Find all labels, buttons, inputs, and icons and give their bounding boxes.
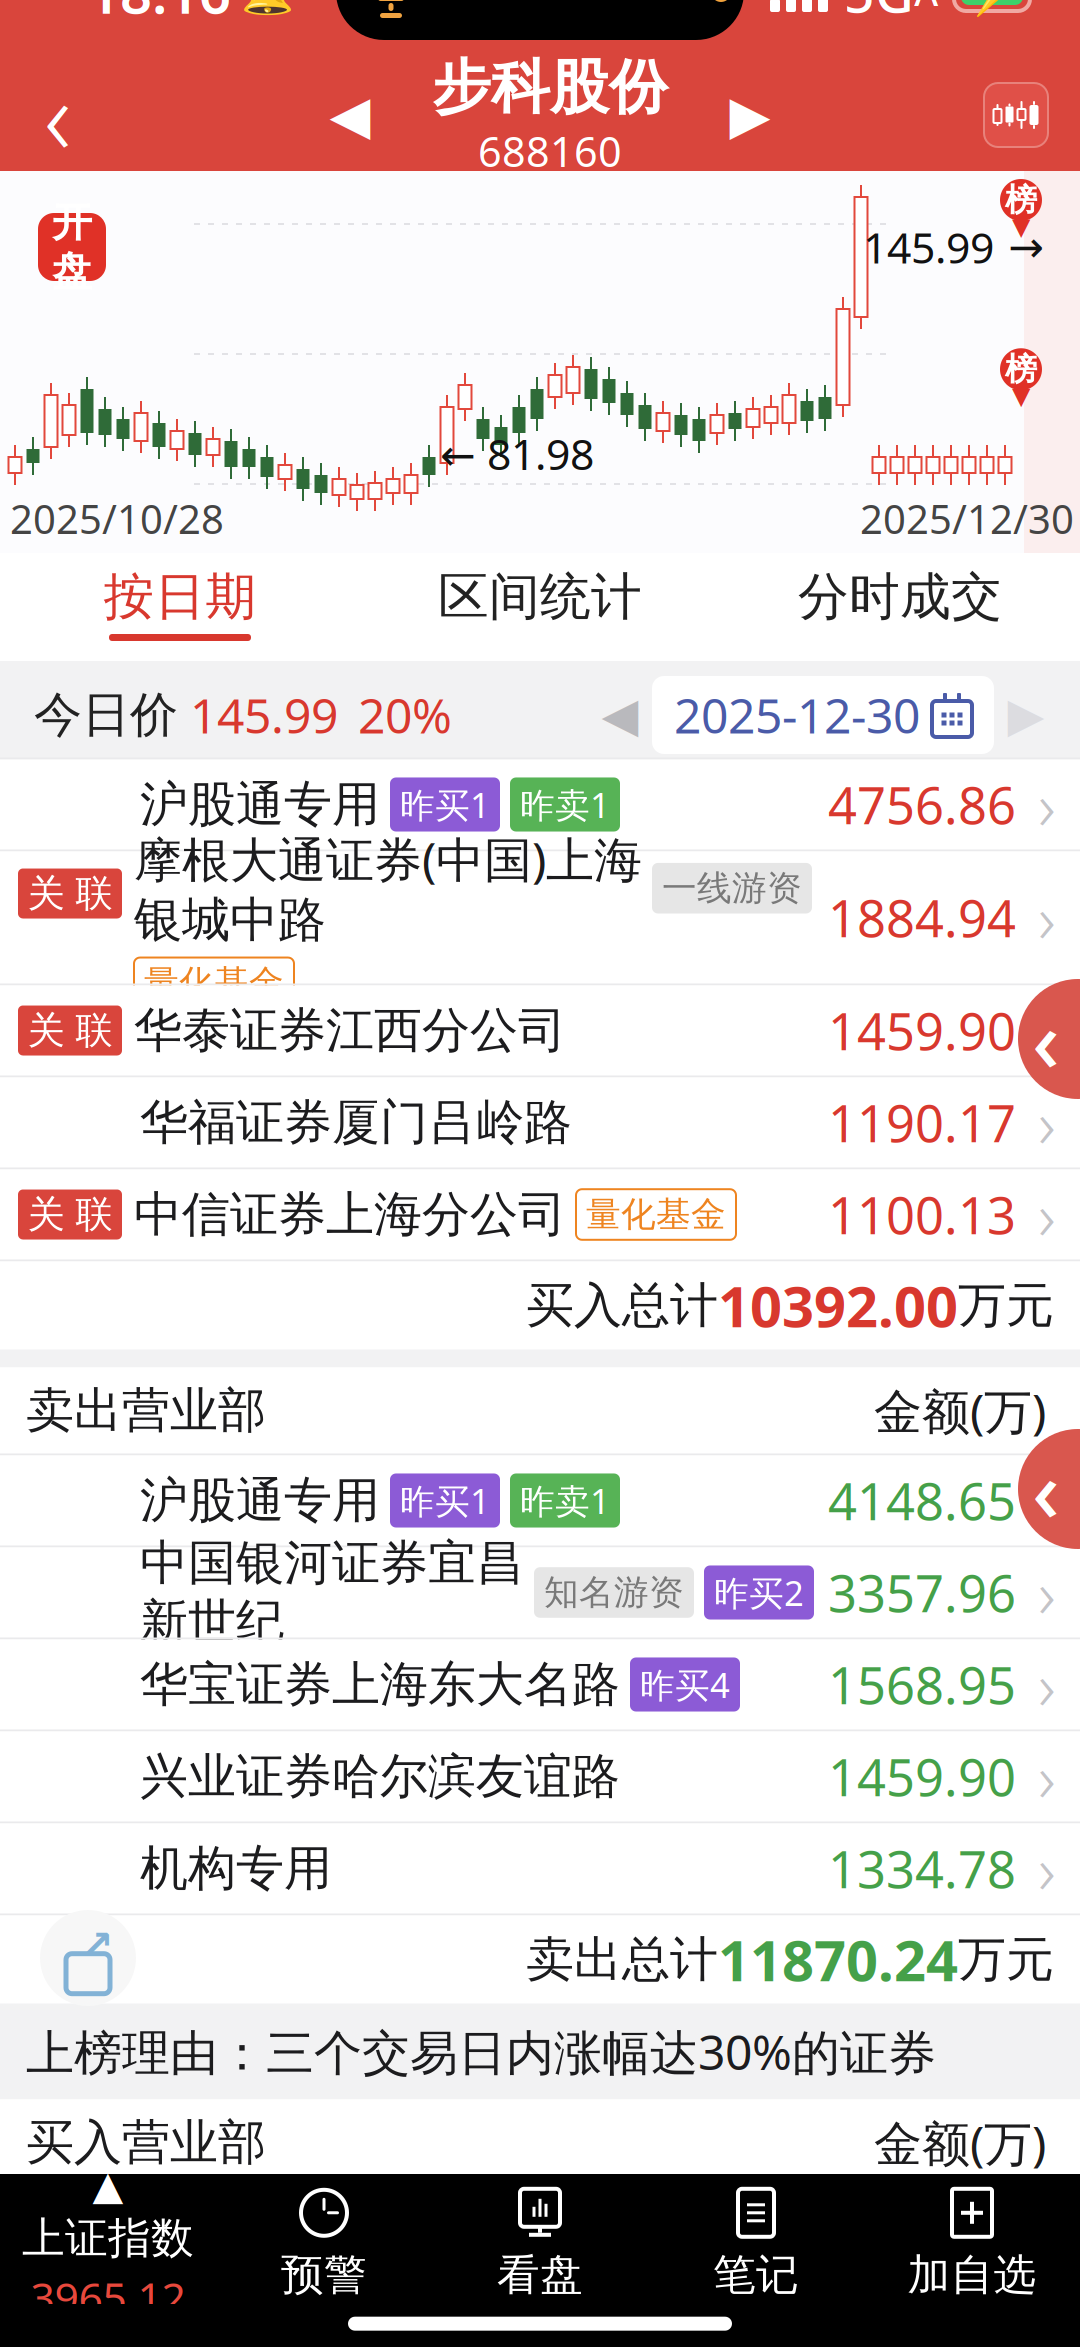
staticText: ↗ <box>80 1922 114 1968</box>
button[interactable]: 关 联 <box>0 851 1080 983</box>
staticText: ▶ <box>729 85 770 145</box>
staticText: 分时成交 <box>798 566 1002 628</box>
staticText: 沪股通专用 <box>140 1471 380 1530</box>
staticText: ▲ <box>92 2163 123 2208</box>
staticText: ← 81.98 <box>440 425 594 482</box>
staticText: 2025/10/28 <box>10 492 224 545</box>
staticText: 昨买1 <box>400 1477 490 1523</box>
staticText: ▼ <box>1012 382 1030 409</box>
staticText: 兴业证券哈尔滨友谊路 <box>140 1747 620 1806</box>
staticText: 关 联 <box>27 1192 112 1237</box>
button[interactable]: 前一天 <box>588 680 652 750</box>
staticText: 买入营业部 <box>26 2113 266 2172</box>
button[interactable]: 下一只 <box>702 59 798 171</box>
staticText: 上榜理由：三个交易日内涨幅达30%的证券 <box>26 2020 936 2083</box>
button[interactable]: 沪股通专用 <box>0 759 1080 849</box>
staticText: 昨买2 <box>714 1569 804 1615</box>
staticText: 区间统计 <box>438 566 642 628</box>
staticText: A <box>914 0 938 17</box>
button[interactable]: 沪股通专用 <box>0 1455 1080 1545</box>
staticText: 华宝证券上海东大名路 <box>140 1655 620 1714</box>
staticText: 昨卖1 <box>520 1477 610 1523</box>
staticText: 知名游资 <box>544 1571 684 1614</box>
button[interactable]: 上一只 <box>302 59 398 171</box>
staticText: ‹ <box>1032 982 1060 1096</box>
button[interactable]: 按日期 <box>0 553 360 661</box>
staticText: › <box>1038 760 1056 849</box>
staticText: 10392.00 <box>718 1268 958 1343</box>
button[interactable]: 华福证券厦门吕岭路 <box>0 1077 1080 1167</box>
staticText: 关 联 <box>27 871 112 916</box>
staticText: 预警 <box>281 2249 367 2301</box>
staticText: 1568.95 <box>828 1651 1016 1718</box>
staticText: 2025-12-30 <box>674 683 920 747</box>
staticText: 20% <box>358 683 452 747</box>
button[interactable]: 分享 <box>40 1910 136 2006</box>
staticText: › <box>1038 1824 1056 1913</box>
staticText: 3357.96 <box>828 1559 1016 1626</box>
button[interactable]: 2025-12-30 <box>652 676 994 754</box>
button[interactable]: 华宝证券上海东大名路 <box>0 1639 1080 1729</box>
staticText: 4756.86 <box>828 771 1016 838</box>
staticText: 3965.12 <box>30 2269 185 2325</box>
staticText: 1334.78 <box>828 1835 1016 1902</box>
button[interactable]: 区间统计 <box>360 553 720 661</box>
button[interactable]: 展开 <box>1018 979 1080 1099</box>
staticText: ◀ <box>601 688 638 742</box>
staticText: 按日期 <box>103 566 256 628</box>
staticText: ‹ <box>44 46 72 184</box>
staticText: 量化基金 <box>144 962 284 1004</box>
staticText: 2025/12/30 <box>860 492 1074 545</box>
staticText: › <box>1038 1732 1056 1821</box>
staticText: 🔔 <box>240 0 293 16</box>
button[interactable]: 返回 <box>0 59 116 171</box>
staticText: 昨买1 <box>400 781 490 827</box>
staticText: ⚡ <box>964 0 1020 18</box>
button[interactable]: ▲ <box>0 2163 216 2325</box>
staticText: 中信证券上海分公司 <box>134 1185 566 1244</box>
button[interactable]: K线图 <box>984 83 1048 147</box>
button[interactable]: 展开 <box>1018 1429 1080 1549</box>
staticText: 关 联 <box>27 1008 112 1053</box>
staticText: 5G <box>844 0 914 27</box>
button[interactable]: 机构专用 <box>0 1823 1080 1913</box>
staticText: 金额(万) <box>874 2111 1046 2174</box>
staticText: › <box>1038 873 1056 962</box>
staticText: 1884.94 <box>828 884 1016 951</box>
staticText: 步科股份 <box>432 51 668 124</box>
staticText: › <box>1038 1548 1056 1637</box>
button[interactable]: 中国银河证券宜昌新世纪 <box>0 1547 1080 1637</box>
staticText: 1100.13 <box>828 1181 1016 1248</box>
staticText: 4148.65 <box>828 1467 1016 1534</box>
button[interactable]: 关 联 <box>0 1169 1080 1259</box>
staticText: 万元 <box>958 1930 1054 1989</box>
staticText: 一线游资 <box>662 867 802 909</box>
staticText: 1459.90 <box>828 1743 1016 1810</box>
staticText: 145.99 <box>190 683 338 747</box>
staticText: 笔记 <box>713 2249 799 2301</box>
button[interactable]: 看盘 <box>432 2187 648 2301</box>
staticText: 榜 <box>1005 180 1037 220</box>
button[interactable]: 后一天 <box>994 680 1058 750</box>
staticText: › <box>1038 1078 1056 1167</box>
button[interactable]: 预警 <box>216 2187 432 2301</box>
staticText: 华泰证券江西分公司 <box>134 1001 566 1060</box>
button[interactable]: 兴业证券哈尔滨友谊路 <box>0 1731 1080 1821</box>
staticText: ◀ <box>329 85 370 145</box>
button[interactable]: 加自选 <box>864 2187 1080 2301</box>
staticText: 昨买4 <box>640 1661 730 1707</box>
staticText: 沪股通专用 <box>140 775 380 834</box>
staticText: 18:16 <box>88 0 231 29</box>
button[interactable]: 分时成交 <box>720 553 1080 661</box>
staticText: ▼ <box>1012 213 1030 240</box>
button[interactable]: 关 联 <box>0 985 1080 1075</box>
staticText: 1190.17 <box>828 1089 1016 1156</box>
staticText: 华福证券厦门吕岭路 <box>140 1093 572 1152</box>
staticText: 机构专用 <box>140 1839 332 1898</box>
staticText: › <box>1038 1456 1056 1545</box>
button[interactable]: 笔记 <box>648 2187 864 2301</box>
staticText: ▶ <box>1007 688 1044 742</box>
staticText: → <box>994 223 1044 271</box>
staticText: › <box>1038 1640 1056 1729</box>
